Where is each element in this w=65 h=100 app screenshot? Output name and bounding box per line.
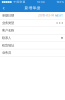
staticText: 联系人 bbox=[2, 36, 11, 40]
staticText: 业务类型 bbox=[2, 21, 14, 25]
staticText: NEXT bbox=[55, 14, 63, 17]
button[interactable]: Back bbox=[0, 4, 7, 12]
staticText: ●●●●● 中国联通 bbox=[1, 0, 25, 4]
staticText: ‹ bbox=[2, 5, 4, 11]
staticText: 收货地址 bbox=[2, 43, 14, 47]
staticText: 100% bbox=[56, 0, 63, 4]
staticText: 14:06 bbox=[37, 0, 45, 4]
staticText: 业务员 bbox=[2, 51, 11, 55]
staticText: 2018-03-14 bbox=[38, 14, 54, 17]
staticText: 单据日期 bbox=[2, 13, 14, 17]
staticText: 客户名称 bbox=[2, 28, 14, 32]
staticText: 新增单据 bbox=[24, 6, 40, 10]
